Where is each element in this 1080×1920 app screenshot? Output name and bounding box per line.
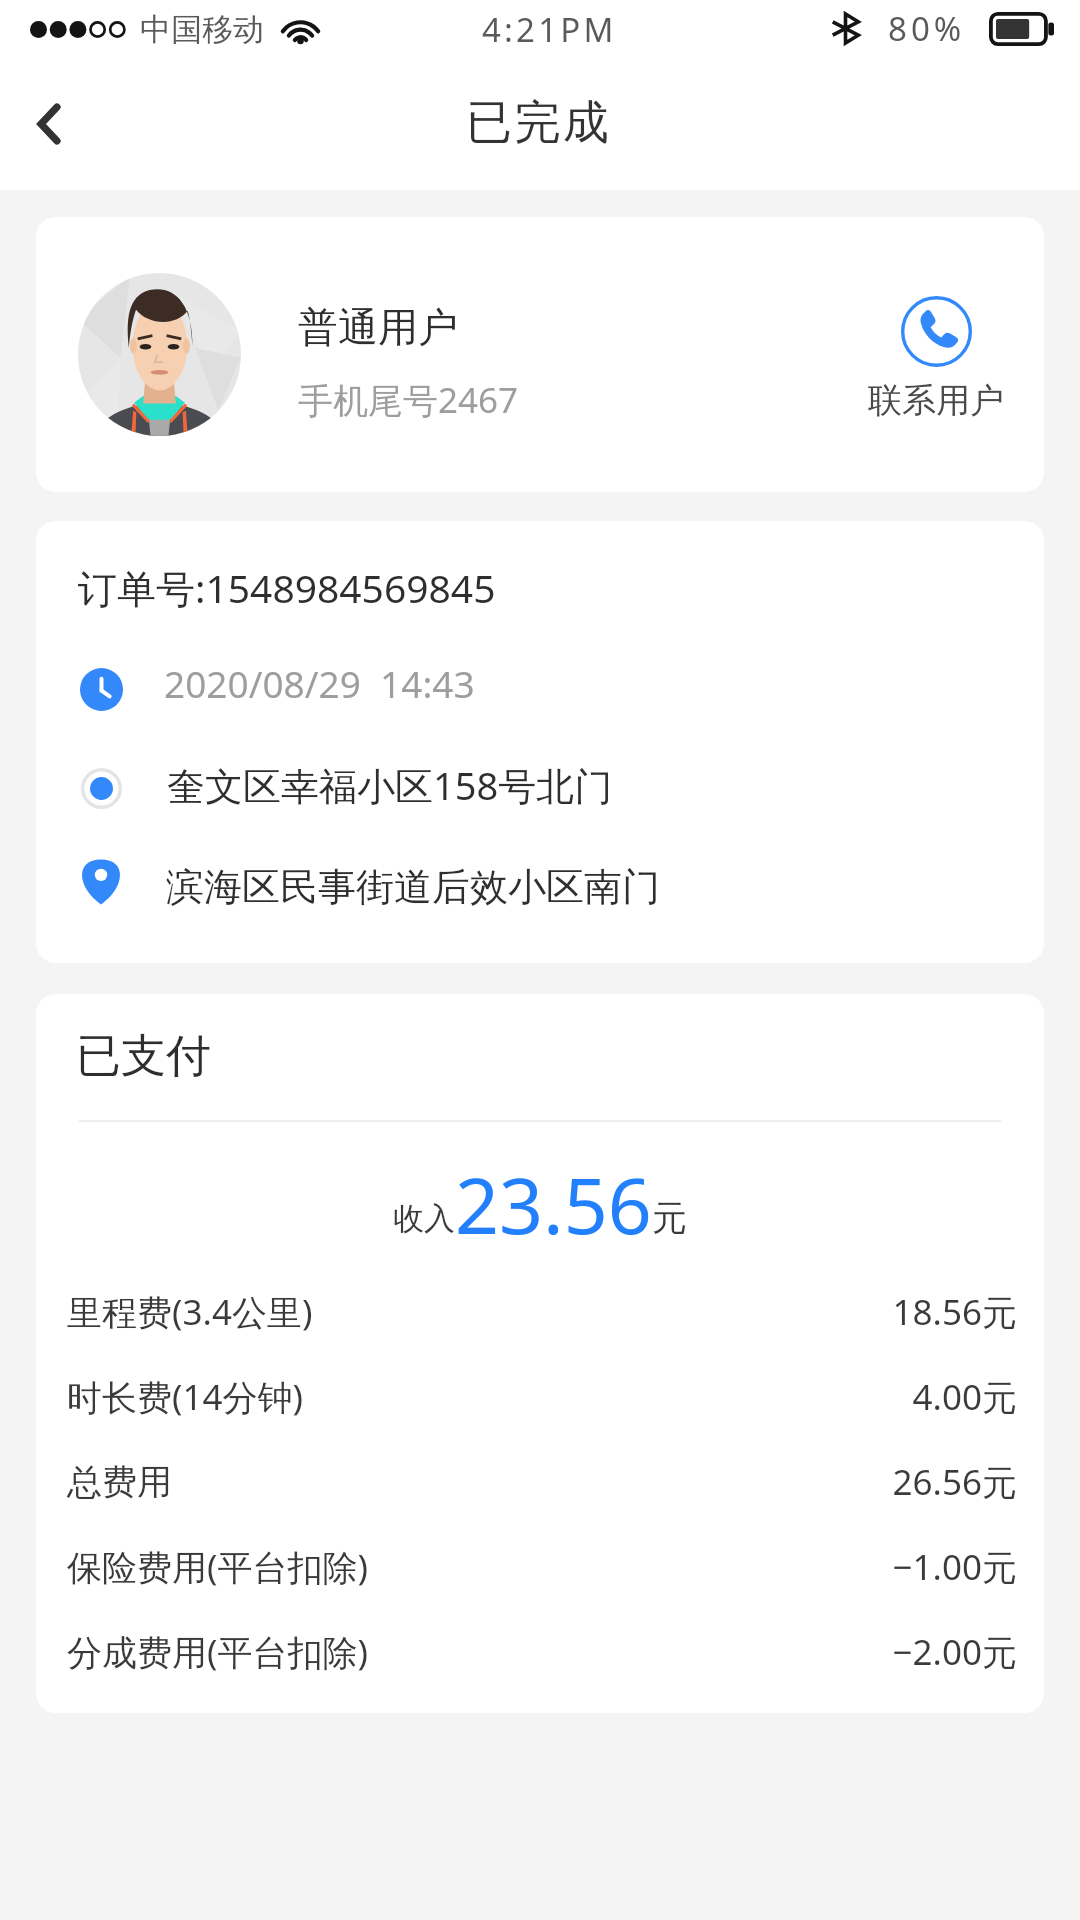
staticText: 23.56 — [455, 1152, 652, 1257]
button[interactable]: Back — [0, 59, 110, 190]
staticText: 4.00元 — [912, 1373, 1017, 1421]
staticText: 普通用户 — [298, 302, 458, 352]
staticText: 80% — [888, 6, 966, 51]
staticText: 18.56元 — [892, 1288, 1017, 1336]
staticText: 滨海区民事街道后效小区南门 — [166, 863, 660, 911]
staticText: 联系用户 — [868, 379, 1004, 422]
staticText: −2.00元 — [892, 1628, 1017, 1676]
staticText: 里程费(3.4公里) — [67, 1288, 313, 1336]
staticText: 奎文区幸福小区158号北门 — [167, 759, 613, 811]
staticText: 保险费用(平台扣除) — [67, 1543, 369, 1591]
staticText: 手机尾号2467 — [298, 376, 519, 424]
staticText: 订单号:1548984569845 — [78, 561, 496, 614]
staticText: 总费用 — [67, 1460, 172, 1504]
staticText: 元 — [652, 1196, 687, 1240]
staticText: 收入 — [393, 1199, 455, 1238]
staticText: 26.56元 — [892, 1458, 1017, 1506]
staticText: −1.00元 — [892, 1543, 1017, 1591]
staticText: 时长费(14分钟) — [67, 1373, 304, 1421]
button[interactable]: 联系用户 — [868, 296, 1004, 422]
staticText: 已完成 — [466, 94, 612, 152]
staticText: 中国移动 — [140, 10, 264, 49]
staticText: 2020/08/29 14:43 — [164, 658, 475, 708]
staticText: 4:21PM — [482, 7, 617, 52]
staticText: 已支付 — [76, 1028, 211, 1085]
staticText: 分成费用(平台扣除) — [67, 1628, 369, 1676]
